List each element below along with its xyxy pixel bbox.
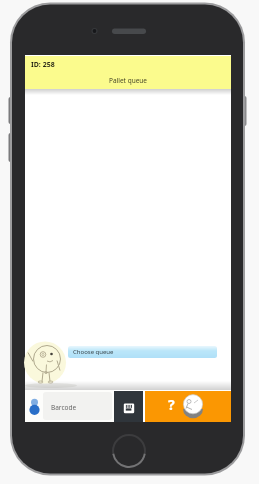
staticText: Barcode <box>51 403 77 412</box>
button[interactable]: ? <box>145 391 231 422</box>
button[interactable] <box>114 391 143 422</box>
staticText: ? <box>168 395 175 414</box>
staticText: Pallet queue <box>109 76 147 85</box>
button[interactable]: Barcode <box>25 390 114 422</box>
staticText: Choose queue <box>73 348 114 356</box>
staticText: ID: 258 <box>31 60 55 70</box>
button[interactable]: Choose queue <box>68 346 217 358</box>
button[interactable]: ID: 258 <box>25 56 231 89</box>
